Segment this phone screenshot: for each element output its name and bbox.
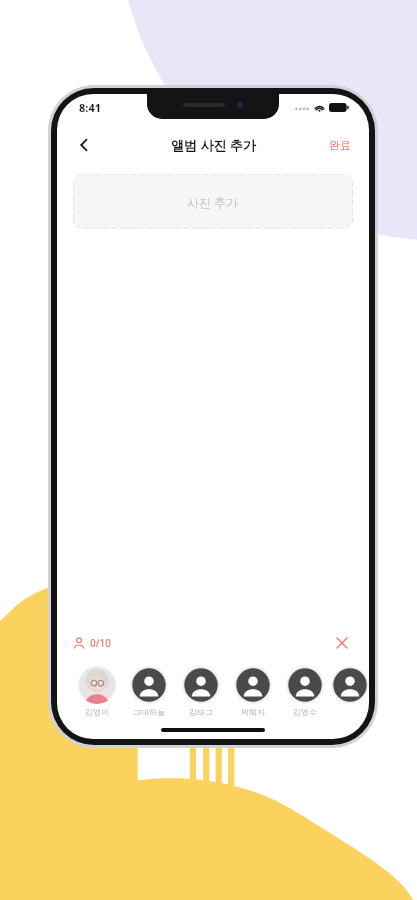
button[interactable]: More members bbox=[331, 666, 369, 704]
button[interactable]: 김영수 bbox=[279, 666, 331, 717]
button[interactable]: 박혜자 bbox=[227, 666, 279, 717]
staticText: 박혜자 bbox=[241, 707, 265, 717]
staticText: 그대하늘 bbox=[133, 707, 165, 717]
button[interactable]: 그대하늘 bbox=[123, 666, 175, 717]
button[interactable]: 0/10 bbox=[73, 636, 112, 650]
button[interactable]: 사진 추가 bbox=[73, 174, 353, 229]
staticText: 0/10 bbox=[90, 636, 112, 650]
button[interactable]: 김태그 bbox=[175, 666, 227, 717]
button[interactable]: 김영미 bbox=[71, 666, 123, 717]
staticText: 사진 추가 bbox=[187, 194, 239, 210]
staticText: 김영미 bbox=[85, 707, 109, 717]
button[interactable]: 완료 bbox=[325, 134, 355, 156]
staticText: 김태그 bbox=[189, 707, 213, 717]
staticText: 김영수 bbox=[293, 707, 317, 717]
staticText: 완료 bbox=[329, 138, 351, 152]
staticText: 앨범 사진 추가 bbox=[171, 136, 256, 154]
button[interactable]: Close bbox=[331, 632, 353, 654]
button[interactable]: Back bbox=[67, 128, 101, 162]
staticText: 8:41 bbox=[79, 100, 101, 115]
